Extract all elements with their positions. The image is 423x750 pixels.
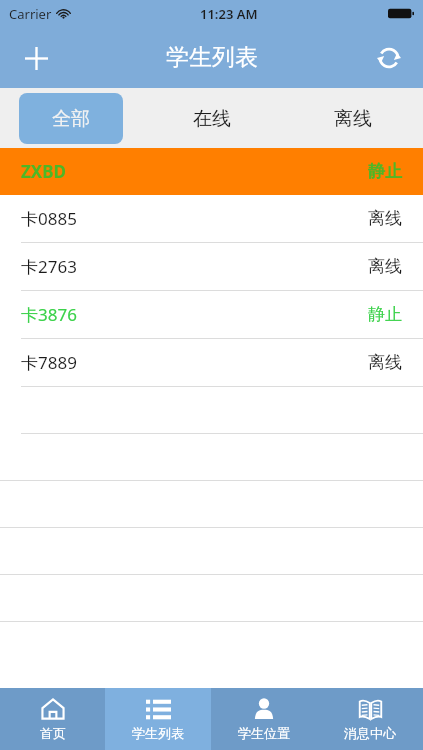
staticText: 离线 — [368, 208, 402, 229]
staticText: 卡2763 — [21, 255, 77, 278]
staticText: 在线 — [193, 107, 231, 131]
staticText: 卡3876 — [21, 303, 77, 326]
staticText: 静止 — [368, 304, 402, 325]
staticText: ZXBD — [21, 160, 66, 183]
button[interactable]: Refresh — [367, 36, 411, 80]
button[interactable]: 全部 — [19, 93, 123, 144]
staticText: 学生列表 — [166, 43, 258, 72]
button[interactable]: 卡2763 — [0, 243, 423, 290]
staticText: 卡7889 — [21, 351, 77, 374]
staticText: Carrier — [9, 5, 52, 23]
button[interactable]: 在线 — [160, 93, 264, 144]
staticText: 学生列表 — [132, 725, 184, 741]
button[interactable]: ZXBD — [0, 148, 423, 195]
staticText: 卡0885 — [21, 207, 77, 230]
staticText: 首页 — [40, 725, 66, 741]
staticText: 消息中心 — [344, 725, 396, 741]
staticText: 离线 — [368, 352, 402, 373]
button[interactable]: 学生位置 — [211, 688, 317, 750]
button[interactable]: 卡7889 — [0, 339, 423, 386]
button[interactable]: 消息中心 — [317, 688, 423, 750]
staticText: 静止 — [368, 161, 402, 182]
button[interactable]: 卡0885 — [0, 195, 423, 242]
button[interactable]: 首页 — [0, 688, 105, 750]
button[interactable]: Add — [14, 36, 58, 80]
button[interactable]: 卡3876 — [0, 291, 423, 338]
staticText: 学生位置 — [238, 725, 290, 741]
staticText: 全部 — [52, 107, 90, 131]
staticText: 11:23 AM — [200, 5, 258, 23]
staticText: 离线 — [334, 107, 372, 131]
staticText: 离线 — [368, 256, 402, 277]
button[interactable]: 离线 — [301, 93, 405, 144]
button[interactable]: 学生列表 — [105, 688, 211, 750]
